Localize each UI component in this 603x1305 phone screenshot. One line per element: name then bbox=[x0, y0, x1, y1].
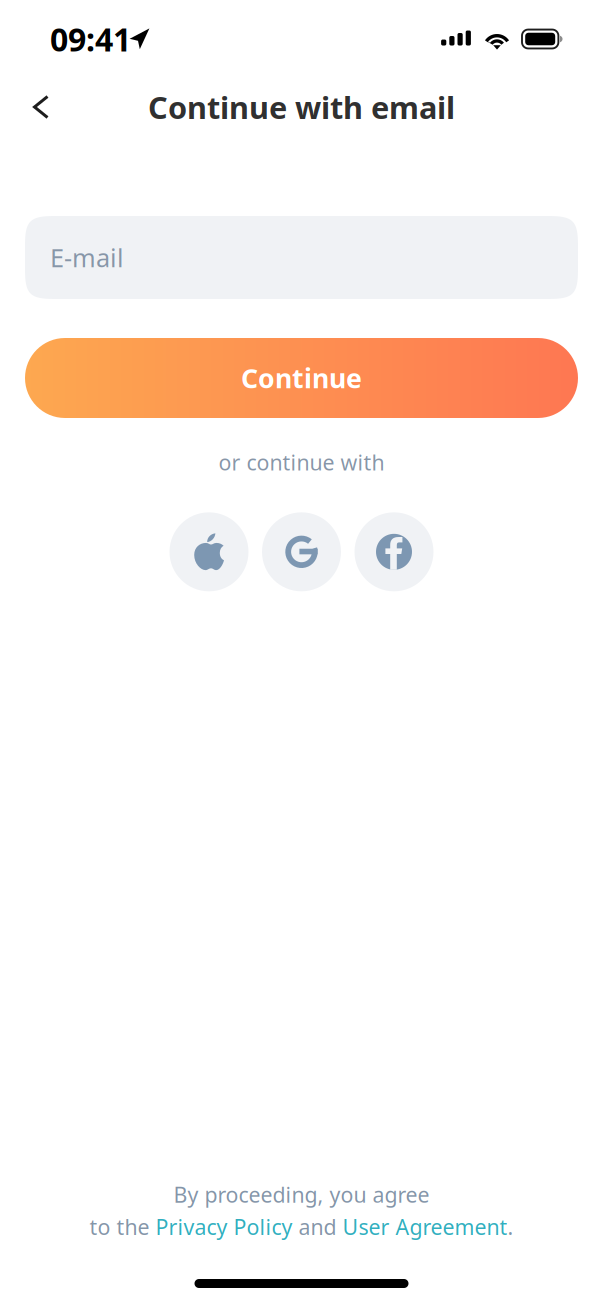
staticText: By proceeding, you agree bbox=[173, 1180, 429, 1209]
button[interactable]: Privacy Policy bbox=[155, 1213, 292, 1241]
button[interactable]: Continue with Google bbox=[262, 512, 341, 591]
staticText: and bbox=[292, 1213, 342, 1241]
button[interactable]: Continue with Facebook bbox=[354, 512, 433, 591]
staticText: . bbox=[507, 1213, 513, 1241]
staticText: E-mail bbox=[50, 241, 124, 274]
button[interactable]: User Agreement bbox=[342, 1213, 507, 1241]
staticText: or continue with bbox=[218, 448, 384, 476]
staticText: to the bbox=[89, 1213, 155, 1241]
staticText: Privacy Policy bbox=[155, 1213, 292, 1241]
button[interactable]: Continue bbox=[0, 338, 603, 418]
staticText: User Agreement bbox=[342, 1213, 507, 1241]
staticText: 09:41 bbox=[50, 18, 131, 60]
button[interactable]: E-mail bbox=[0, 216, 603, 299]
button[interactable]: Back bbox=[14, 80, 68, 134]
staticText: Continue bbox=[241, 360, 362, 396]
staticText: Continue with email bbox=[148, 87, 455, 127]
button[interactable]: Continue with Apple bbox=[169, 512, 248, 591]
